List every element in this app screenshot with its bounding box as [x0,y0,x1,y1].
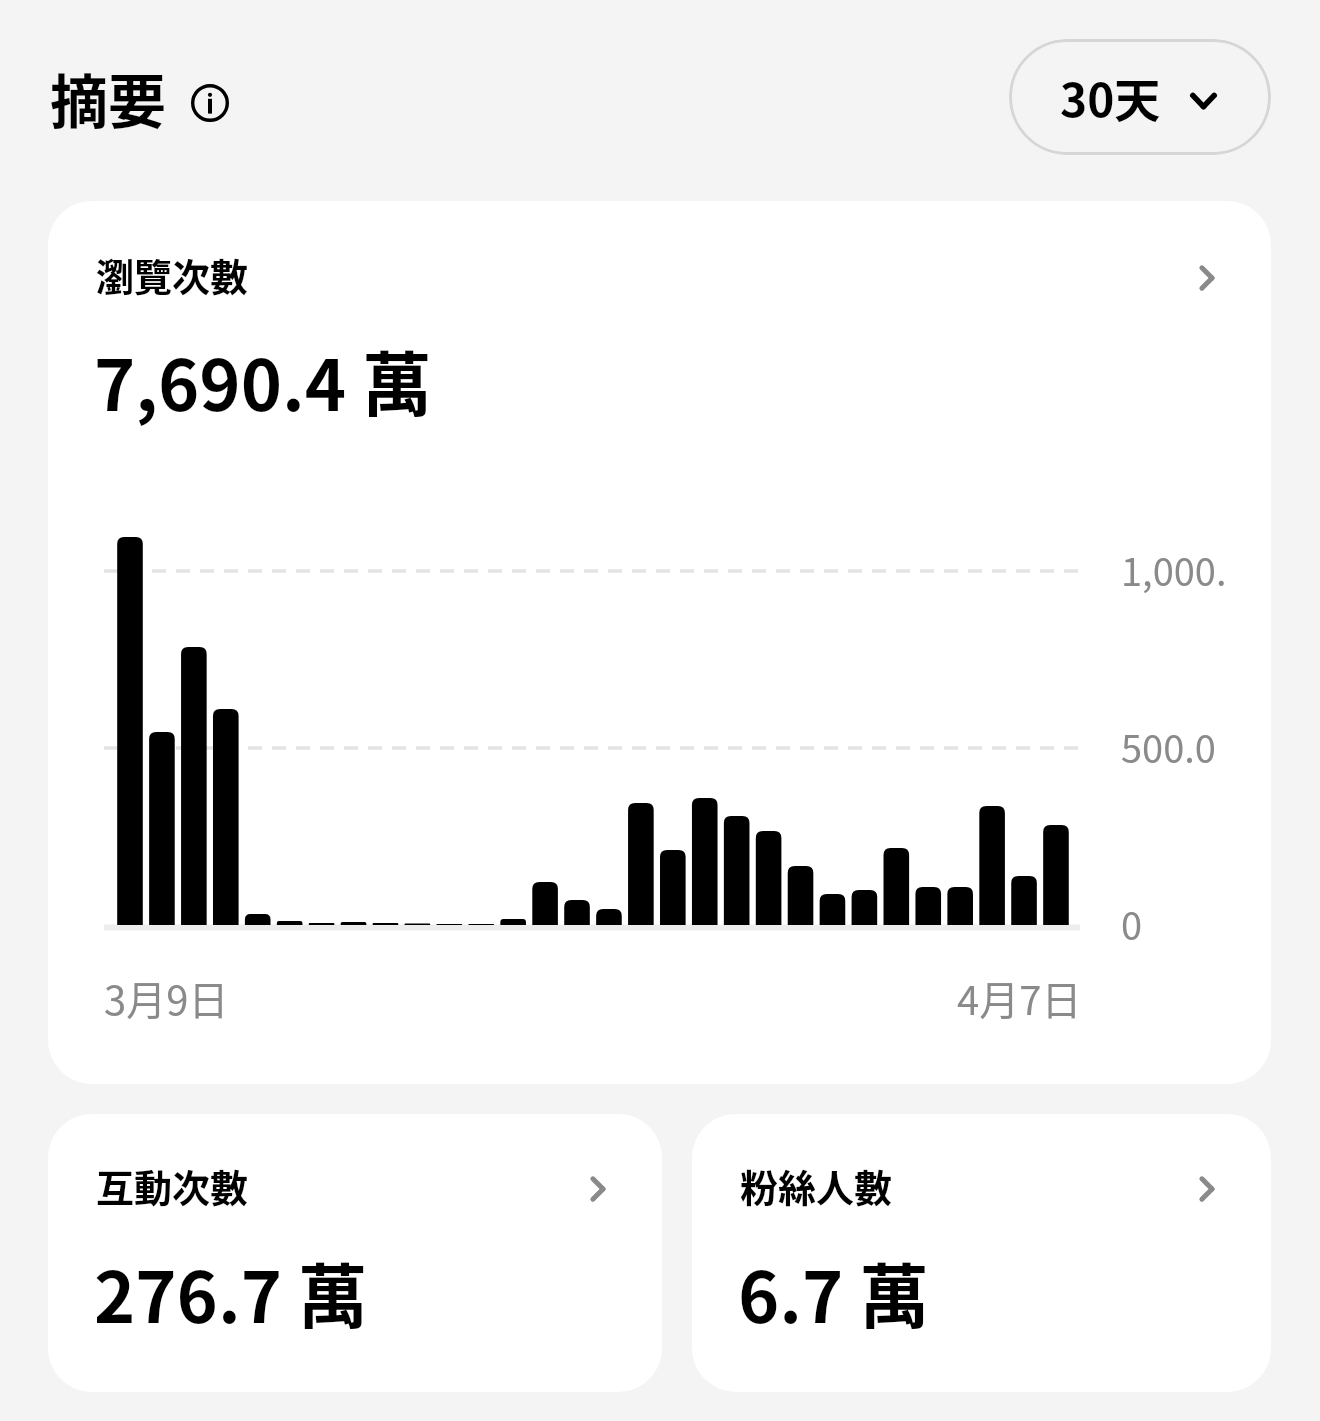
button[interactable]: Select date range: 30 days [1009,39,1271,155]
staticText: 0 [1121,896,1143,951]
staticText: 瀏覽次數 [96,247,249,302]
other: Open 粉絲人數 details [1191,1172,1225,1206]
staticText: 500.0 [1121,719,1216,774]
button[interactable]: About this summary [187,80,233,126]
staticText: 30天 [1060,64,1161,131]
staticText: 276.7 萬 [94,1242,368,1343]
button[interactable]: 粉絲人數 [692,1114,1271,1392]
staticText: 互動次數 [96,1158,249,1213]
staticText: 6.7 萬 [738,1242,930,1343]
staticText: 摘要 [50,56,167,140]
staticText: 3月9日 [104,969,229,1027]
button[interactable]: 瀏覽次數 [48,201,1271,1084]
other: Open 互動次數 details [582,1172,616,1206]
staticText: 4月7日 [957,969,1082,1027]
button[interactable]: 互動次數 [48,1114,662,1392]
staticText: 粉絲人數 [740,1158,893,1213]
staticText: 7,690.4 萬 [94,330,432,431]
staticText: 1,000. [1121,542,1227,597]
other: Open 瀏覽次數 details [1191,261,1225,295]
